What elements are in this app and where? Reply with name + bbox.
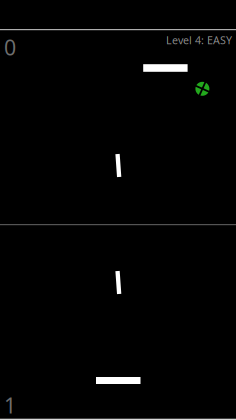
staticText: 1 xyxy=(4,391,16,419)
staticText: Level 4: EASY xyxy=(166,33,232,47)
staticText: 0 xyxy=(4,33,16,61)
button[interactable]: Pause game xyxy=(0,0,236,420)
